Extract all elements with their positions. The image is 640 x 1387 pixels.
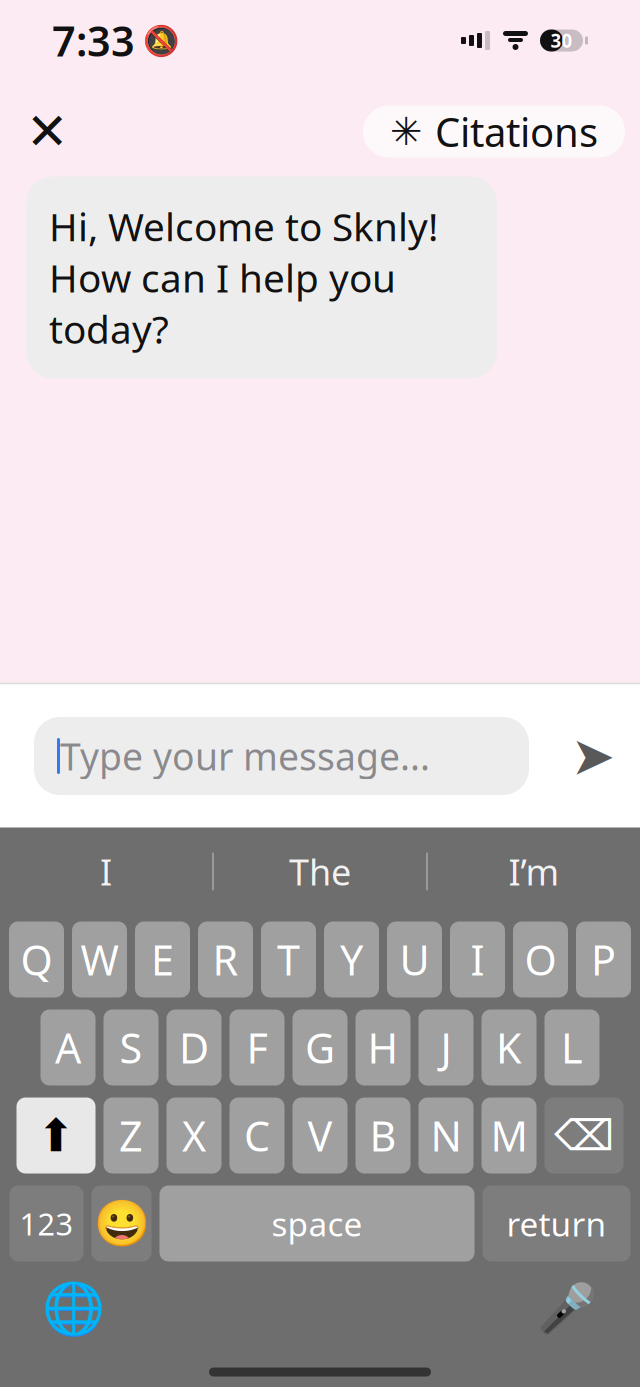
button[interactable]: E bbox=[135, 921, 190, 997]
staticText: L bbox=[561, 1020, 583, 1075]
staticText: H bbox=[367, 1020, 398, 1075]
staticText: N bbox=[430, 1108, 461, 1163]
staticText: F bbox=[246, 1020, 267, 1075]
button[interactable]: R bbox=[198, 921, 253, 997]
staticText: V bbox=[307, 1108, 332, 1163]
button[interactable]: M bbox=[481, 1097, 536, 1173]
staticText: Q bbox=[20, 932, 52, 987]
staticText: U bbox=[399, 932, 429, 987]
staticText: B bbox=[369, 1108, 396, 1163]
staticText: W bbox=[80, 932, 118, 987]
button[interactable]: S bbox=[103, 1009, 158, 1085]
button[interactable]: 123 bbox=[9, 1185, 83, 1261]
staticText: ⬆ bbox=[37, 1110, 75, 1161]
button[interactable]: ✳ bbox=[363, 105, 625, 157]
staticText: I bbox=[470, 932, 484, 987]
button[interactable]: X bbox=[166, 1097, 221, 1173]
button[interactable]: Q bbox=[9, 921, 64, 997]
button[interactable]: Z bbox=[103, 1097, 158, 1173]
staticText: Citations bbox=[435, 105, 598, 158]
button[interactable]: Send bbox=[556, 717, 630, 795]
button[interactable]: V bbox=[292, 1097, 347, 1173]
button[interactable]: Y bbox=[324, 921, 379, 997]
button[interactable]: Delete bbox=[544, 1097, 623, 1173]
staticText: 7:33 bbox=[52, 13, 135, 68]
staticText: G bbox=[305, 1020, 335, 1075]
button[interactable]: N bbox=[418, 1097, 473, 1173]
staticText: I bbox=[100, 848, 112, 895]
staticText: I’m bbox=[508, 848, 559, 895]
button[interactable]: P bbox=[576, 921, 631, 997]
button[interactable]: space bbox=[159, 1185, 474, 1261]
staticText: A bbox=[55, 1020, 81, 1075]
staticText: return bbox=[506, 1201, 606, 1246]
staticText: P bbox=[591, 932, 616, 987]
staticText: Z bbox=[119, 1108, 143, 1163]
staticText: S bbox=[119, 1020, 142, 1075]
button[interactable]: H bbox=[355, 1009, 410, 1085]
staticText: D bbox=[179, 1020, 209, 1075]
staticText: 😀 bbox=[93, 1198, 149, 1249]
button[interactable]: Close bbox=[18, 102, 76, 160]
staticText: 🌐 bbox=[41, 1280, 104, 1337]
staticText: 🔕 bbox=[143, 24, 180, 57]
button[interactable]: J bbox=[418, 1009, 473, 1085]
staticText: 123 bbox=[19, 1203, 73, 1244]
button[interactable]: G bbox=[292, 1009, 347, 1085]
staticText: ✕ bbox=[26, 103, 68, 160]
button[interactable]: Type your message... bbox=[34, 717, 529, 795]
staticText: space bbox=[271, 1201, 362, 1246]
button[interactable]: Dictation bbox=[539, 1280, 595, 1336]
staticText: E bbox=[151, 932, 174, 987]
button[interactable]: D bbox=[166, 1009, 221, 1085]
staticText: J bbox=[440, 1020, 451, 1075]
button[interactable]: I bbox=[450, 921, 505, 997]
button[interactable]: O bbox=[513, 921, 568, 997]
staticText: The bbox=[289, 848, 351, 895]
button[interactable]: L bbox=[544, 1009, 599, 1085]
staticText: 30 bbox=[550, 28, 572, 53]
staticText: ✳ bbox=[390, 110, 422, 153]
button[interactable]: F bbox=[229, 1009, 284, 1085]
button[interactable]: Shift bbox=[16, 1097, 95, 1173]
button[interactable]: C bbox=[229, 1097, 284, 1173]
button[interactable]: W bbox=[72, 921, 127, 997]
staticText: K bbox=[496, 1020, 522, 1075]
staticText: R bbox=[212, 932, 238, 987]
staticText: Y bbox=[340, 932, 363, 987]
staticText: C bbox=[244, 1108, 270, 1163]
button[interactable]: K bbox=[481, 1009, 536, 1085]
button[interactable]: U bbox=[387, 921, 442, 997]
staticText: M bbox=[490, 1108, 527, 1163]
staticText: T bbox=[277, 932, 300, 987]
staticText: X bbox=[182, 1108, 206, 1163]
button[interactable]: Emoji bbox=[91, 1185, 151, 1261]
staticText: Type your message... bbox=[60, 731, 430, 781]
staticText: Hi, Welcome to Sknly! How can I help you… bbox=[49, 200, 438, 354]
staticText: O bbox=[524, 932, 556, 987]
button[interactable]: The bbox=[214, 827, 426, 915]
button[interactable]: I bbox=[0, 827, 212, 915]
button[interactable]: B bbox=[355, 1097, 410, 1173]
button[interactable]: T bbox=[261, 921, 316, 997]
staticText: 🎤 bbox=[537, 1281, 597, 1336]
button[interactable]: return bbox=[482, 1185, 630, 1261]
button[interactable]: Next keyboard bbox=[45, 1280, 101, 1336]
staticText: ⌫ bbox=[554, 1111, 614, 1160]
button[interactable]: A bbox=[40, 1009, 95, 1085]
button[interactable]: I’m bbox=[428, 827, 640, 915]
staticText: ➤ bbox=[570, 726, 615, 786]
